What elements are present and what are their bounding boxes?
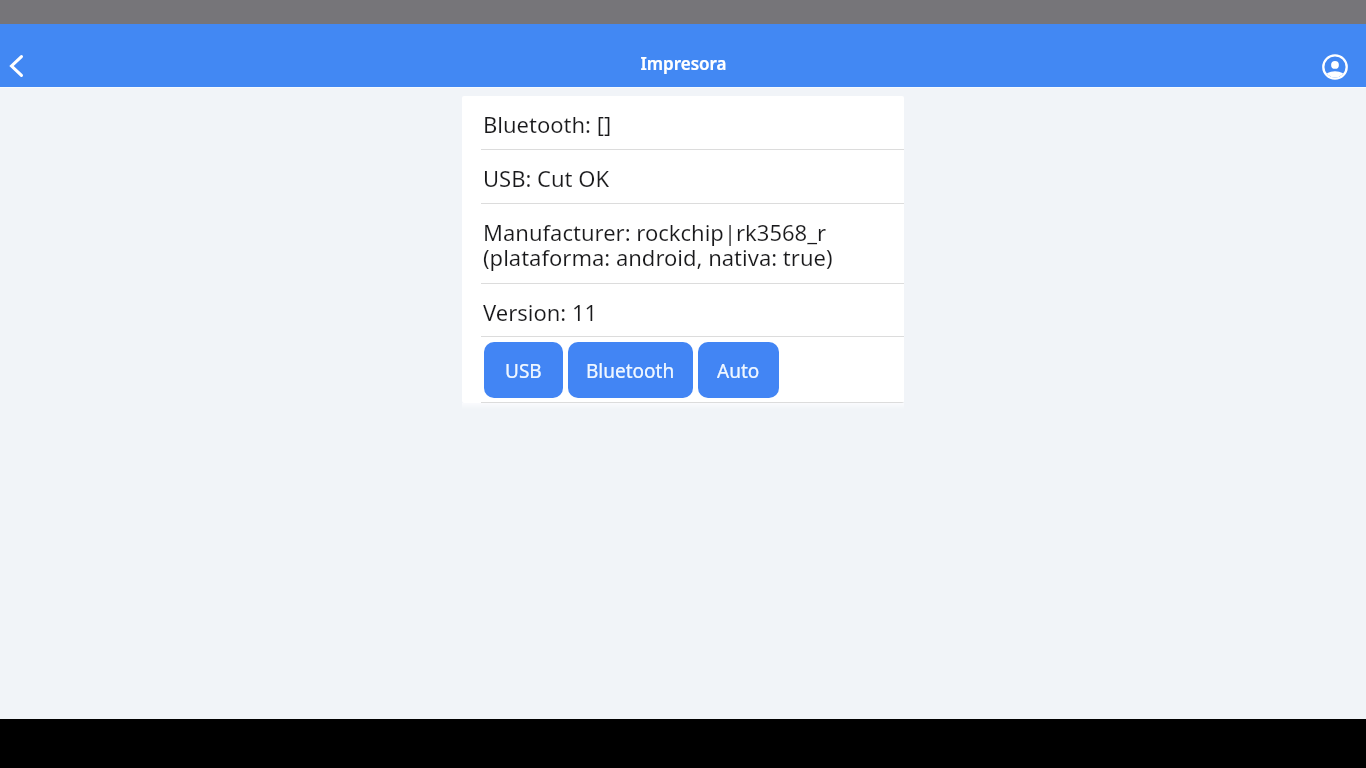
button[interactable]: Bluetooth	[568, 342, 693, 398]
staticText: Auto	[717, 358, 760, 384]
button[interactable]: Version: 11	[462, 284, 904, 337]
staticText: Bluetooth	[586, 358, 675, 384]
staticText: Version: 11	[483, 297, 598, 327]
staticText: Manufacturer: rockchip|rk3568_r (platafo…	[483, 217, 833, 273]
staticText: Impresora	[640, 52, 727, 75]
staticText: USB	[505, 358, 542, 384]
button[interactable]: Auto	[698, 342, 779, 398]
button[interactable]: USB	[484, 342, 563, 398]
staticText: USB: Cut OK	[483, 163, 610, 193]
button[interactable]: USB: Cut OK	[462, 150, 904, 204]
staticText: Bluetooth: []	[483, 109, 612, 139]
button[interactable]: Back	[0, 49, 32, 82]
button[interactable]: Bluetooth: []	[462, 96, 904, 150]
button[interactable]: Manufacturer: rockchip|rk3568_r (platafo…	[462, 204, 904, 284]
button[interactable]: Account	[1318, 50, 1352, 84]
